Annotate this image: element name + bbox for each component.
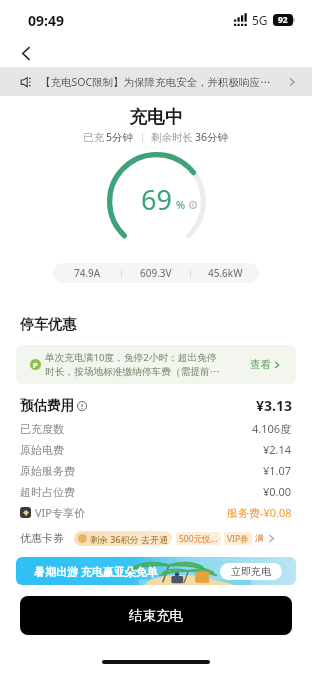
staticText: 原始电费 [20,443,64,457]
staticText: % [176,197,186,212]
staticText: ¥3.13 [256,396,292,415]
staticText: VIP专享价 [35,505,85,520]
button[interactable]: Back [12,39,40,67]
button[interactable]: 【充电SOC限制】为保障充电安全，并积极响应主管... [0,67,312,96]
staticText: 充电中 [129,106,183,129]
staticText: ¥2.14 [263,442,292,457]
staticText: 69 [141,181,172,218]
staticText: 查看 [250,358,271,371]
staticText: 5分钟 [106,130,134,144]
button[interactable]: 暑期出游 充电赢亚朵免单 [16,557,296,585]
staticText: 单次充电满10度，免停2小时；超出免停时长，按场地标准缴纳停车费（需提前绑定… [45,351,223,378]
staticText: 优惠卡券 [20,531,64,545]
staticText: ¥0.00 [263,484,292,499]
button[interactable]: 结束充电 [20,596,292,635]
staticText: 36分钟 [195,130,229,144]
staticText: 09:49 [28,11,64,30]
staticText: 500元悦... [179,533,218,545]
staticText: 74.9A [74,266,101,280]
staticText: VIP券 [227,533,249,545]
staticText: 结束充电 [129,607,183,624]
staticText: 45.6kW [208,266,243,280]
staticText: 609.3V [140,266,172,280]
staticText: 立即充电 [231,565,271,578]
staticText: P [33,360,38,370]
staticText: 满 [255,533,264,544]
staticText: 服务费-¥0.08 [227,505,292,520]
staticText: 5G [252,12,268,28]
button[interactable]: 优惠卡券 [20,527,292,549]
staticText: 预估费用 [20,397,74,414]
staticText: ¥1.07 [263,463,292,478]
button[interactable]: 立即充电 [220,563,282,580]
staticText: 已充 [83,131,104,144]
staticText: 超时占位费 [20,485,75,499]
staticText: 已充度数 [20,422,64,436]
staticText: 原始服务费 [20,464,75,478]
staticText: 剩余时长 [151,131,193,144]
staticText: 4.106度 [252,421,292,436]
button[interactable]: P [16,345,296,384]
staticText: 暑期出游 充电赢亚朵免单 [34,564,158,579]
staticText: 剩余 36积分 去开通 [90,533,168,545]
staticText: 【充电SOC限制】为保障充电安全，并积极响应主管... [40,75,281,89]
staticText: 92 [278,14,288,26]
staticText: 停车优惠 [20,316,76,334]
